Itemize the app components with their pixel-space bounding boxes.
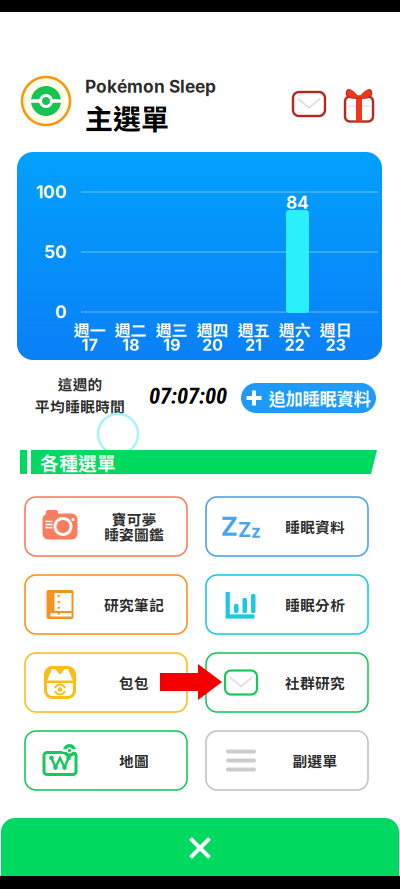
staticText: 包包 [119,672,149,693]
staticText: 週六 [278,318,310,341]
staticText: 研究筆記 [104,594,164,615]
button[interactable]: 追加睡眠資料 [241,383,376,413]
staticText: 睡眠分析 [285,594,345,615]
staticText: 平均睡眠時間 [35,395,125,417]
staticText: 週二 [114,318,146,341]
staticText: 19 [163,335,180,355]
staticText: 100 [36,181,67,202]
button[interactable]: Z [206,497,368,556]
staticText: 週日 [319,318,351,341]
button[interactable]: Close [1,818,399,889]
button[interactable]: Mail [285,79,339,123]
button[interactable]: 寶可夢 [25,497,187,556]
staticText: 地圖 [119,750,149,771]
staticText: 20 [202,335,223,355]
staticText: 23 [325,335,345,355]
staticText: 21 [245,335,262,355]
staticText: 睡姿圖鑑 [104,523,164,545]
staticText: Z [238,518,251,542]
staticText: Z [221,511,238,542]
staticText: Pokémon Sleep [85,76,216,97]
staticText: 0 [55,301,67,322]
staticText: 18 [122,335,139,355]
staticText: 07:07:00 [149,383,227,409]
staticText: 追加睡眠資料 [268,385,370,411]
staticText: 社群研究 [285,672,345,693]
button[interactable]: 包包 [25,653,187,712]
staticText: 週三 [155,318,187,341]
button[interactable]: 地圖 [25,731,187,790]
staticText: 84 [286,192,309,213]
staticText: 各種選單 [40,448,116,475]
button[interactable]: 社群研究 [206,653,368,712]
staticText: 這週的 [57,373,102,394]
button[interactable]: 研究筆記 [25,575,187,634]
staticText: 副選單 [292,750,337,771]
button[interactable]: 睡眠分析 [206,575,368,634]
staticText: 寶可夢 [111,508,156,530]
staticText: 週四 [196,318,228,341]
button[interactable]: 副選單 [206,731,368,790]
staticText: 睡眠資料 [285,516,345,537]
staticText: 週五 [237,318,269,341]
staticText: 22 [284,335,304,355]
staticText: 週一 [73,318,105,341]
staticText: 50 [44,241,67,262]
staticText: z [251,521,261,542]
button[interactable]: Gifts [339,79,379,123]
staticText: 主選單 [85,97,169,137]
staticText: 17 [81,335,97,355]
